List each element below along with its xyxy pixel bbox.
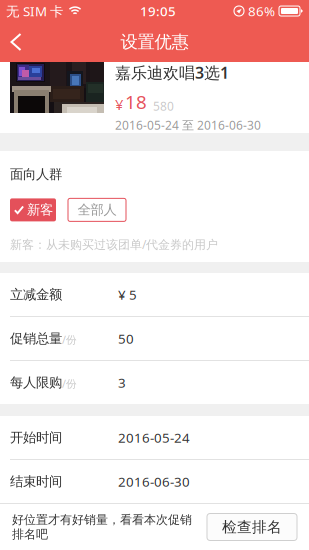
staticText: 86% bbox=[248, 2, 275, 20]
staticText: 嘉乐迪欢唱3选1 bbox=[115, 62, 229, 83]
staticText: 19:05 bbox=[140, 2, 176, 20]
staticText: 3 bbox=[118, 374, 126, 391]
staticText: 18 bbox=[125, 89, 147, 114]
staticText: 2016-05-24 至 2016-06-30 bbox=[115, 117, 261, 133]
staticText: 设置优惠 bbox=[120, 31, 188, 53]
staticText: 全部人 bbox=[77, 202, 116, 218]
staticText: 面向人群 bbox=[10, 166, 62, 182]
staticText: 新客：从未购买过该团单/代金券的用户 bbox=[10, 236, 218, 252]
button[interactable]: 检查排名 bbox=[207, 513, 297, 540]
staticText: 新客 bbox=[27, 202, 53, 218]
staticText: 无 SIM 卡 bbox=[6, 2, 63, 20]
staticText: 好位置才有好销量，看看本次促销排名吧 bbox=[12, 512, 192, 542]
staticText: ¥ bbox=[115, 95, 123, 114]
staticText: 50 bbox=[118, 330, 134, 347]
button[interactable]: 全部人 bbox=[68, 198, 126, 221]
staticText: 立减金额 bbox=[10, 286, 62, 303]
staticText: 结束时间 bbox=[10, 473, 62, 490]
button[interactable]: Back bbox=[0, 22, 32, 62]
staticText: ¥ 5 bbox=[118, 286, 137, 303]
staticText: /份 bbox=[62, 332, 77, 347]
staticText: 580 bbox=[153, 98, 174, 114]
button[interactable]: 新客 bbox=[10, 198, 56, 221]
staticText: 检查排名 bbox=[222, 518, 282, 536]
staticText: 开始时间 bbox=[10, 429, 62, 446]
staticText: 每人限购 bbox=[10, 374, 62, 391]
staticText: 促销总量 bbox=[10, 330, 62, 347]
staticText: 2016-05-24 bbox=[118, 429, 190, 446]
staticText: /份 bbox=[62, 376, 77, 391]
staticText: 2016-06-30 bbox=[118, 473, 190, 490]
